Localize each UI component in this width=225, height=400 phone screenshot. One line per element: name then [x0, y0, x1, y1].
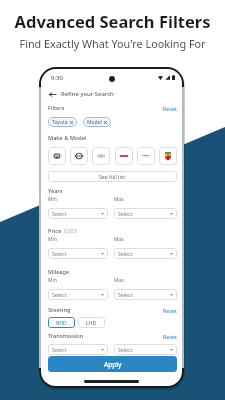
button[interactable]: Brand 4	[115, 147, 133, 165]
staticText: Select	[118, 291, 133, 298]
staticText: Select	[52, 250, 67, 257]
button[interactable]: Select	[114, 208, 177, 219]
staticText: Select	[52, 346, 67, 353]
staticText: Reset	[163, 105, 177, 112]
staticText: LHD	[86, 319, 97, 326]
button[interactable]: Back	[47, 89, 58, 100]
staticText: Refine your Search	[61, 90, 114, 98]
staticText: (USD)	[64, 228, 78, 235]
staticText: Max	[114, 196, 124, 203]
button[interactable]: Select	[48, 208, 108, 219]
staticText: Max	[114, 236, 124, 243]
staticText: Reset	[163, 333, 177, 340]
button[interactable]: See full list	[48, 171, 177, 182]
staticText: Select	[52, 291, 67, 298]
staticText: See full list	[99, 173, 126, 180]
button[interactable]: Model	[83, 117, 111, 127]
staticText: Transmission	[48, 332, 84, 340]
button[interactable]: Brand 2	[70, 147, 88, 165]
button[interactable]: Brand 6	[159, 147, 177, 165]
staticText: Max	[114, 277, 124, 284]
staticText: Select	[118, 346, 133, 353]
button[interactable]: Brand 3	[92, 147, 110, 165]
staticText: Model	[87, 119, 102, 126]
staticText: Mileage	[48, 268, 70, 276]
button[interactable]: Reset	[163, 307, 177, 314]
staticText: Make & Model	[48, 134, 87, 142]
button[interactable]: Apply	[48, 356, 177, 372]
staticText: Steering	[48, 306, 71, 314]
staticText: RHD	[56, 319, 67, 326]
staticText: Min	[48, 277, 57, 284]
staticText: Filters	[48, 104, 65, 112]
staticText: Price	[48, 227, 62, 235]
button[interactable]: Select	[114, 289, 177, 300]
button[interactable]: Select	[48, 344, 108, 355]
button[interactable]: Reset	[163, 105, 177, 112]
staticText: Toyota	[52, 119, 68, 126]
button[interactable]: Toyota	[48, 117, 77, 127]
button[interactable]: Select	[114, 248, 177, 259]
button[interactable]: Reset	[163, 333, 177, 340]
staticText: Reset	[163, 307, 177, 314]
staticText: Find Exactly What You're Looking For	[0, 36, 225, 51]
button[interactable]: LHD	[78, 317, 105, 328]
staticText: Years	[48, 187, 63, 195]
staticText: Min	[48, 236, 57, 243]
button[interactable]: Brand 5	[137, 147, 155, 165]
staticText: Apply	[104, 360, 122, 369]
button[interactable]: RHD	[48, 317, 75, 328]
button[interactable]: Brand 1	[48, 147, 66, 165]
button[interactable]: Select	[48, 248, 108, 259]
staticText: Advanced Search Filters	[0, 10, 225, 32]
staticText: Select	[118, 210, 133, 217]
staticText: Select	[52, 210, 67, 217]
button[interactable]: Select	[48, 289, 108, 300]
staticText: Select	[118, 250, 133, 257]
staticText: 9:30	[51, 74, 63, 82]
staticText: Min	[48, 196, 57, 203]
button[interactable]: Select	[114, 344, 177, 355]
